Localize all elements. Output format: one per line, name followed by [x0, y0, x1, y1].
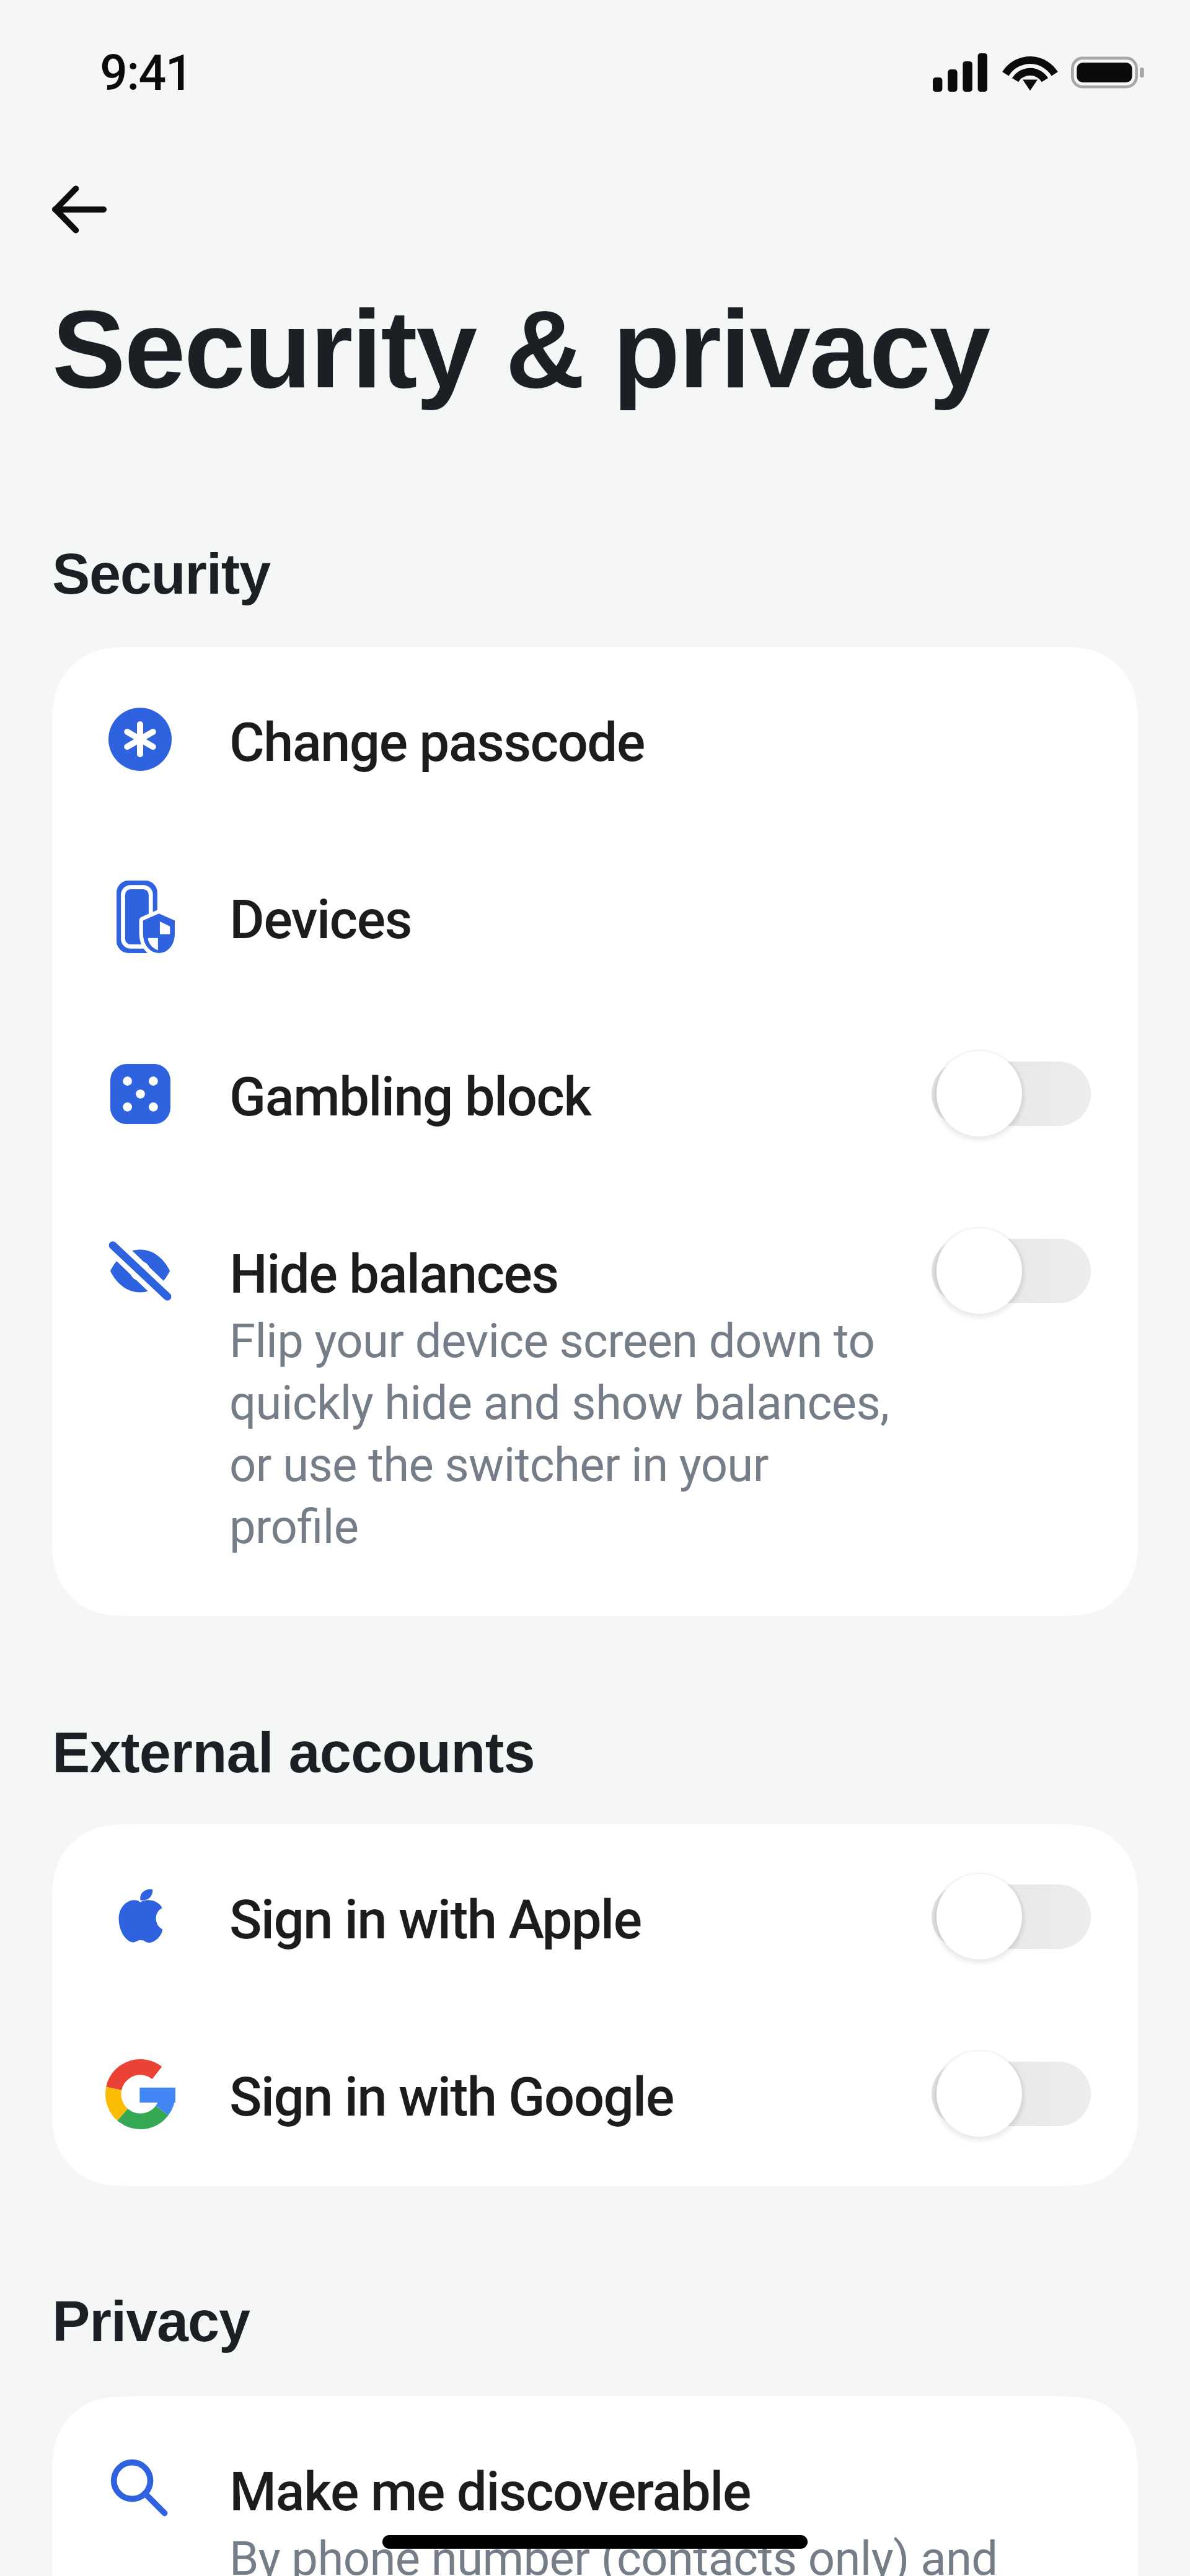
- button[interactable]: Sign in with Google: [52, 2005, 1138, 2183]
- button[interactable]: Toggle off: [932, 2062, 1091, 2126]
- staticText: Security: [52, 542, 270, 606]
- button[interactable]: Make me discoverable: [52, 2400, 1138, 2576]
- staticText: By phone number (contacts only) and Revo…: [229, 2526, 1091, 2576]
- button[interactable]: Sign in with Apple: [52, 1828, 1138, 2005]
- button[interactable]: Toggle off: [932, 1062, 1091, 1126]
- staticText: Devices: [229, 888, 412, 951]
- button[interactable]: Toggle off: [932, 1884, 1091, 1949]
- staticText: Change passcode: [229, 711, 645, 774]
- button[interactable]: Hide balances: [52, 1182, 1138, 1612]
- button[interactable]: Back: [25, 155, 134, 264]
- staticText: Gambling block: [229, 1065, 591, 1128]
- staticText: 9:41: [100, 45, 192, 102]
- staticText: Privacy: [52, 2290, 250, 2354]
- staticText: Security & privacy: [52, 288, 989, 411]
- staticText: Hide balances: [229, 1242, 558, 1306]
- staticText: External accounts: [52, 1721, 535, 1785]
- staticText: Make me discoverable: [229, 2460, 751, 2523]
- button[interactable]: Gambling block: [52, 1005, 1138, 1182]
- staticText: Sign in with Google: [229, 2065, 674, 2129]
- button[interactable]: Toggle off: [932, 1239, 1091, 1303]
- button[interactable]: Change passcode: [52, 651, 1138, 828]
- button[interactable]: Devices: [52, 828, 1138, 1005]
- staticText: Flip your device screen down to quickly …: [229, 1308, 901, 1556]
- staticText: Sign in with Apple: [229, 1888, 641, 1951]
